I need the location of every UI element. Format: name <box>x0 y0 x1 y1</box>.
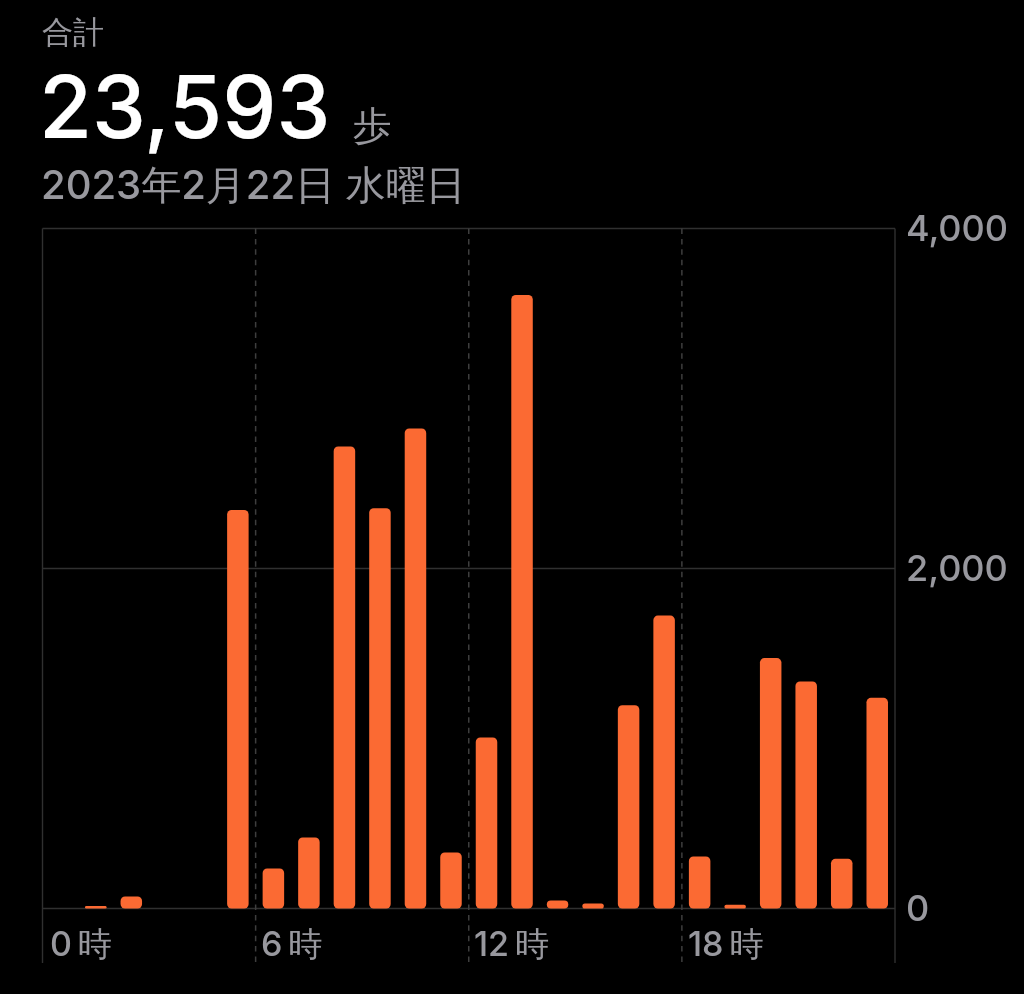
staticText: 2023年2月22日 水曜日 <box>41 160 466 211</box>
staticText: 歩 <box>353 101 392 150</box>
staticText: 4,000 <box>906 206 1009 250</box>
staticText: 0 <box>906 886 930 930</box>
staticText: 2,000 <box>906 546 1008 590</box>
staticText: 23,593 <box>39 55 331 159</box>
staticText: 12 時 <box>474 923 549 966</box>
other: Hourly step chart <box>0 0 1024 994</box>
button[interactable] <box>38 8 468 208</box>
staticText: 18 時 <box>688 923 764 966</box>
staticText: 6 時 <box>261 923 323 966</box>
staticText: 合計 <box>42 13 104 52</box>
staticText: 0 時 <box>50 923 112 966</box>
